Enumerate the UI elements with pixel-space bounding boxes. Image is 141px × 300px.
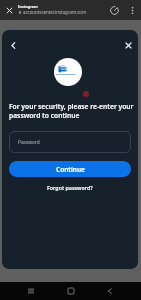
button[interactable]: Back [5,37,21,53]
staticText: accountscenter.instagram.com [23,9,87,15]
button[interactable]: More options [123,1,141,19]
staticText: For your security, please re-enter your … [9,102,137,120]
button[interactable]: Continue [9,161,131,177]
staticText: Password [18,139,40,146]
button[interactable]: Back [101,282,119,300]
button[interactable]: Stop loading [105,1,123,19]
button[interactable]: Close [0,1,18,19]
staticText: Forgot password? [47,184,93,191]
button[interactable]: Forgot password? [41,182,99,193]
staticText: Instagram [18,4,38,9]
button[interactable]: Password [9,131,131,153]
button[interactable]: Home [62,282,80,300]
staticText: Continue [56,165,85,174]
button[interactable]: Recent apps [22,282,40,300]
button[interactable]: Close [120,37,137,54]
